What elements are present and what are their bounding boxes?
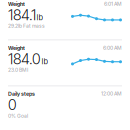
staticText: 6:01 AM <box>104 1 122 7</box>
staticText: 0 <box>8 98 17 111</box>
staticText: Weight <box>8 1 25 7</box>
staticText: lb <box>36 13 43 22</box>
staticText: 184.0 <box>8 52 41 66</box>
staticText: 6:00 AM <box>103 45 122 51</box>
staticText: 184.1 <box>8 8 36 22</box>
staticText: 23.0 BMI <box>8 67 28 73</box>
staticText: Daily steps <box>8 91 35 97</box>
staticText: 29.2lb Fat mass <box>8 23 45 29</box>
button[interactable]: Weight <box>0 0 130 39</box>
staticText: lb <box>41 57 48 66</box>
button[interactable]: Weight <box>0 40 130 85</box>
staticText: 0% Goal <box>8 113 28 119</box>
staticText: Weight <box>8 45 25 51</box>
button[interactable]: Daily steps <box>0 86 130 130</box>
staticText: 12:00 AM <box>101 91 122 97</box>
